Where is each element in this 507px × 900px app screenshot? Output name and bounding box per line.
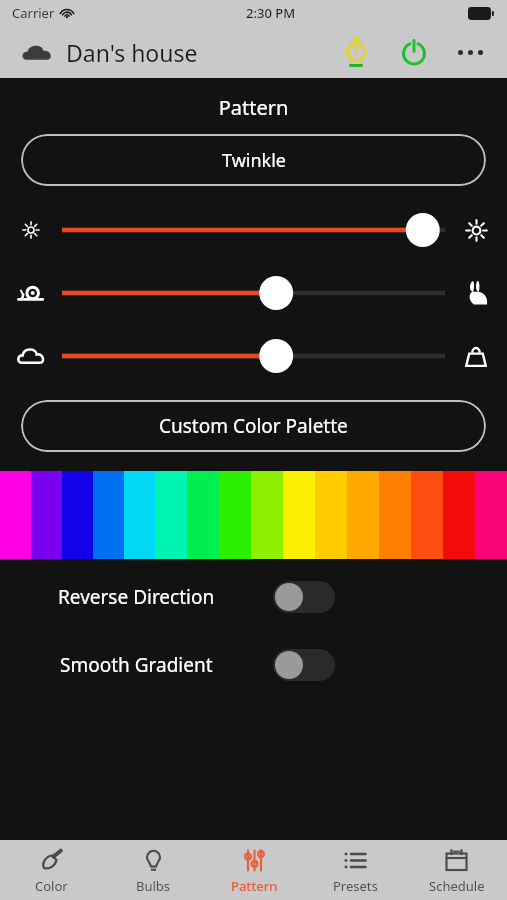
staticText: Dan's house (66, 37, 198, 68)
button[interactable]: Custom Color Palette (21, 400, 486, 452)
button[interactable]: Color palette (0, 471, 507, 559)
button[interactable]: Speed (62, 270, 445, 316)
staticText: Carrier (12, 4, 55, 22)
button[interactable]: Power (391, 29, 437, 75)
staticText: Reverse Direction (58, 584, 215, 610)
button[interactable]: Schedule (406, 840, 507, 900)
button[interactable]: Presets (305, 840, 406, 900)
staticText: Presets (333, 877, 378, 895)
staticText: 2:30 PM (246, 4, 296, 22)
button[interactable]: Timer (333, 29, 379, 75)
button[interactable]: Pattern (204, 840, 305, 900)
button[interactable]: Twinkle (21, 134, 486, 186)
button[interactable]: Cloud connection status (16, 31, 58, 73)
button[interactable]: More options (447, 29, 493, 75)
button[interactable]: Density (62, 333, 445, 379)
button[interactable]: Bulbs (102, 840, 204, 900)
staticText: Bulbs (136, 877, 171, 895)
staticText: Pattern (231, 877, 278, 895)
button[interactable]: Reverse Direction (273, 581, 335, 613)
staticText: Twinkle (222, 148, 286, 173)
staticText: Pattern (0, 94, 507, 121)
staticText: Custom Color Palette (159, 413, 348, 439)
staticText: Smooth Gradient (60, 652, 213, 678)
button[interactable]: Brightness (62, 207, 445, 253)
button[interactable]: Color (0, 840, 102, 900)
staticText: Schedule (429, 877, 485, 895)
button[interactable]: Smooth Gradient (273, 649, 335, 681)
staticText: Color (35, 877, 68, 895)
